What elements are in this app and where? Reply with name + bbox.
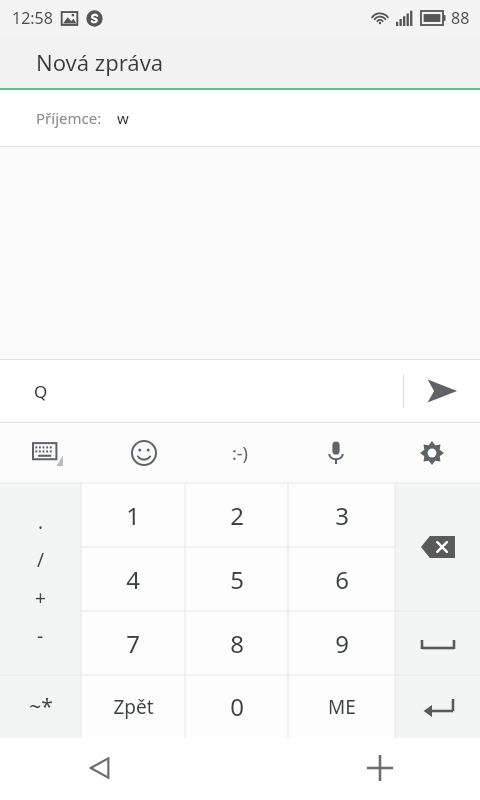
button[interactable]: Backspace bbox=[395, 483, 480, 611]
button[interactable]: 1 bbox=[81, 483, 185, 547]
button[interactable]: Emoji bbox=[96, 423, 192, 483]
button[interactable]: 5 bbox=[185, 547, 288, 611]
button[interactable]: Voice input bbox=[288, 423, 384, 483]
button[interactable]: 0 bbox=[185, 675, 288, 738]
button[interactable]: 6 bbox=[288, 547, 395, 611]
staticText: 3 bbox=[335, 499, 349, 532]
button[interactable]: 3 bbox=[288, 483, 395, 547]
button[interactable]: Zpět bbox=[81, 675, 185, 738]
staticText: 5 bbox=[230, 563, 244, 596]
button[interactable]: Keyboard layout bbox=[0, 423, 96, 483]
button[interactable]: 4 bbox=[81, 547, 185, 611]
button[interactable]: Příjemce: bbox=[0, 90, 480, 146]
button[interactable]: Enter bbox=[395, 675, 480, 738]
staticText: 7 bbox=[126, 627, 140, 660]
staticText: . bbox=[38, 509, 44, 535]
staticText: Q bbox=[34, 380, 48, 403]
button[interactable]: ~* bbox=[0, 675, 81, 738]
staticText: 8 bbox=[230, 627, 244, 660]
staticText: w bbox=[117, 108, 129, 128]
button[interactable]: 9 bbox=[288, 611, 395, 675]
staticText: 6 bbox=[335, 563, 349, 596]
staticText: ME bbox=[328, 694, 356, 720]
staticText: 0 bbox=[230, 690, 244, 723]
staticText: 88 bbox=[451, 7, 470, 29]
staticText: :-) bbox=[232, 441, 249, 466]
staticText: 1 bbox=[126, 499, 140, 532]
staticText: / bbox=[37, 547, 45, 573]
staticText: + bbox=[35, 585, 46, 611]
button[interactable]: Send bbox=[404, 360, 480, 422]
button[interactable]: Add bbox=[352, 740, 408, 796]
staticText: Příjemce: bbox=[36, 108, 102, 128]
staticText: 4 bbox=[126, 563, 140, 596]
staticText: 9 bbox=[335, 627, 349, 660]
staticText: - bbox=[37, 623, 44, 649]
button[interactable]: 7 bbox=[81, 611, 185, 675]
staticText: 2 bbox=[230, 499, 244, 532]
button[interactable]: 8 bbox=[185, 611, 288, 675]
button[interactable]: Back bbox=[72, 740, 128, 796]
staticText: Zpět bbox=[113, 694, 154, 720]
staticText: ~* bbox=[29, 692, 53, 721]
button[interactable]: Space bbox=[395, 611, 480, 675]
button[interactable]: 2 bbox=[185, 483, 288, 547]
button[interactable]: . bbox=[0, 483, 81, 675]
staticText: 12:58 bbox=[12, 7, 53, 29]
button[interactable]: Emoticons bbox=[192, 423, 288, 483]
staticText: Nová zpráva bbox=[36, 47, 164, 77]
button[interactable]: ME bbox=[288, 675, 395, 738]
button[interactable]: Settings bbox=[384, 423, 480, 483]
